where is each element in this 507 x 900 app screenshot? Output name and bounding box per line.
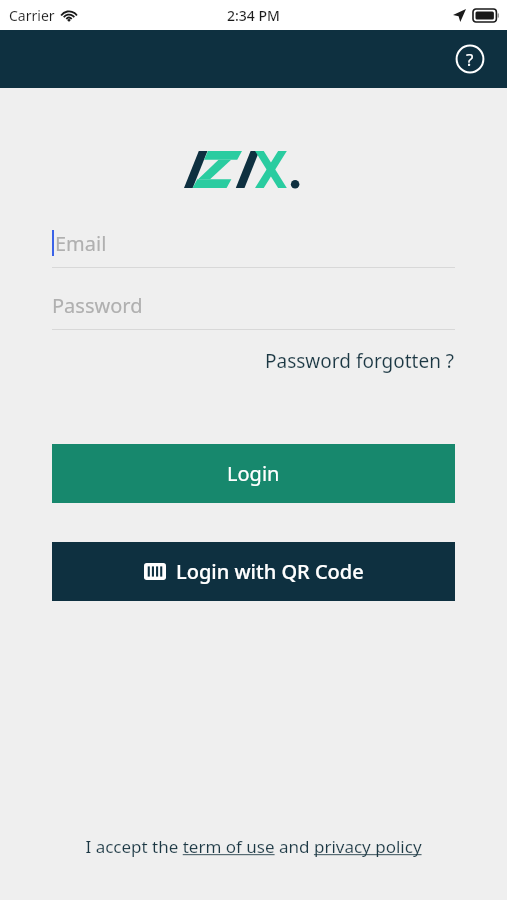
staticText: Login: [227, 460, 280, 487]
button[interactable]: Help: [455, 44, 485, 74]
button[interactable]: I accept the term of use and privacy pol…: [85, 835, 422, 858]
staticText: Login with QR Code: [176, 558, 364, 585]
button[interactable]: Email: [52, 219, 455, 268]
button[interactable]: Login: [52, 444, 455, 503]
staticText: Carrier: [9, 6, 55, 25]
staticText: Email: [55, 230, 107, 257]
staticText: Password forgotten ?: [265, 348, 455, 374]
button[interactable]: Password forgotten ?: [265, 348, 455, 374]
staticText: ?: [466, 48, 474, 71]
staticText: I accept the term of use and privacy pol…: [85, 835, 422, 858]
staticText: Password: [52, 292, 143, 319]
button[interactable]: Password: [52, 281, 455, 330]
button[interactable]: Login with QR Code: [52, 542, 455, 601]
staticText: 2:34 PM: [227, 6, 280, 25]
